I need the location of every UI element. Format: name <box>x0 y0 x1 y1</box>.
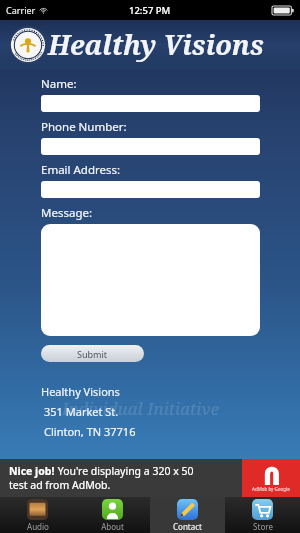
staticText: 351 Market St. <box>44 404 119 419</box>
staticText: Message: <box>41 205 93 221</box>
button[interactable]: Nice job! <box>0 459 300 497</box>
staticText: About <box>101 521 124 532</box>
staticText: Nice job! <box>9 464 55 478</box>
button[interactable] <box>41 138 260 155</box>
staticText: AdMob by Google <box>252 486 290 492</box>
staticText: Carrier <box>6 4 36 16</box>
staticText: Healthy Visions <box>41 384 120 399</box>
button[interactable] <box>41 181 260 198</box>
staticText: Individual Initiative <box>62 397 220 420</box>
staticText: Name: <box>41 76 77 92</box>
button[interactable]: Store <box>225 497 300 533</box>
staticText: Audio <box>27 521 49 532</box>
staticText: Email Address: <box>41 162 121 178</box>
staticText: test ad from AdMob. <box>9 478 111 492</box>
button[interactable] <box>41 224 260 336</box>
staticText: Store <box>253 521 273 532</box>
staticText: You're displaying a 320 x 50 <box>55 464 194 478</box>
staticText: Submit <box>77 348 108 360</box>
staticText: Phone Number: <box>41 119 127 135</box>
button[interactable]: Contact <box>150 497 225 533</box>
staticText: Clinton, TN 37716 <box>44 424 136 439</box>
button[interactable]: Audio <box>0 497 75 533</box>
button[interactable]: About <box>75 497 150 533</box>
button[interactable] <box>41 95 260 112</box>
staticText: 12:57 PM <box>129 4 171 17</box>
staticText: Contact <box>173 521 202 532</box>
button[interactable]: Submit <box>41 345 144 362</box>
staticText: Healthy Visions <box>48 26 264 63</box>
